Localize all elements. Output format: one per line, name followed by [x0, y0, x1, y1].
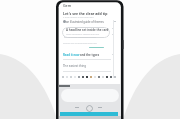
staticText: Gem [63, 3, 72, 8]
staticText: Read it now [63, 53, 80, 57]
staticText: A headline set inside the card [66, 28, 109, 32]
button[interactable]: Gem [63, 3, 72, 8]
staticText: and the types [80, 53, 100, 57]
staticText: an illustrated guide of themes [66, 20, 104, 24]
button[interactable] [61, 89, 119, 102]
staticText: The easiest thing [63, 64, 87, 68]
staticText: Let's see the clear add tip [63, 11, 108, 16]
button[interactable] [62, 27, 110, 38]
staticText: this is a body paragraph of text [64, 36, 96, 39]
button[interactable]: Voice input [86, 105, 93, 112]
staticText: a small caption of text goes here [63, 16, 94, 19]
staticText: some secondary caption line here [66, 33, 100, 36]
staticText: another line of descriptive body text [63, 42, 97, 45]
